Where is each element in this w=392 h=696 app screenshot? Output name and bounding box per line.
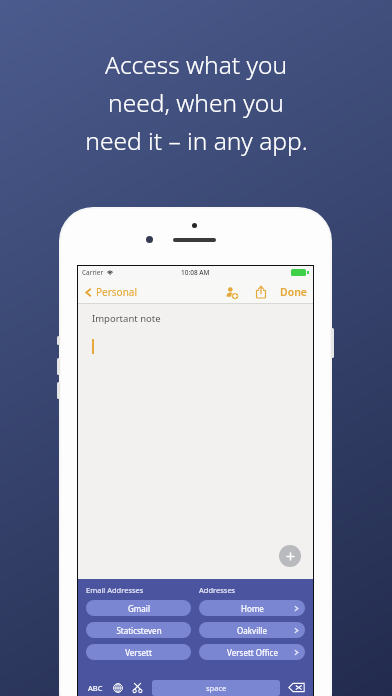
button[interactable]: Change keyboard [112, 682, 124, 694]
staticText: Gmail [128, 603, 150, 614]
button[interactable]: Delete [288, 681, 305, 694]
staticText: Carrier [82, 268, 104, 277]
button[interactable]: Oakville [199, 622, 305, 638]
button[interactable]: Home [199, 600, 305, 616]
staticText: Email Addresses [86, 585, 191, 595]
staticText: Oakville [237, 625, 267, 636]
button[interactable]: Add contact [222, 283, 240, 301]
button[interactable]: space [152, 680, 280, 696]
staticText: 10:08 AM [181, 268, 210, 277]
staticText: Versett Office [227, 647, 278, 658]
button[interactable]: Add [279, 545, 301, 567]
staticText: Versett [125, 647, 152, 658]
staticText: space [206, 683, 227, 693]
staticText: need, when you [108, 86, 284, 119]
button[interactable]: ABC [86, 683, 105, 693]
button[interactable]: Snippets [131, 681, 144, 694]
staticText: Addresses [199, 585, 305, 595]
button[interactable]: Gmail [86, 600, 191, 616]
button[interactable]: Personal [83, 285, 138, 299]
button[interactable]: Versett Office [199, 644, 305, 660]
staticText: Personal [96, 285, 138, 299]
button[interactable]: Versett [86, 644, 191, 660]
staticText: Done [280, 285, 308, 299]
staticText: Important note [92, 312, 161, 325]
staticText: Home [241, 603, 264, 614]
button[interactable]: Share [252, 283, 270, 301]
button[interactable]: Done [280, 285, 308, 299]
staticText: Staticsteven [116, 625, 162, 636]
button[interactable]: Staticsteven [86, 622, 191, 638]
staticText: ABC [88, 683, 103, 693]
staticText: need it – in any app. [85, 124, 308, 157]
staticText: Access what you [105, 48, 287, 81]
